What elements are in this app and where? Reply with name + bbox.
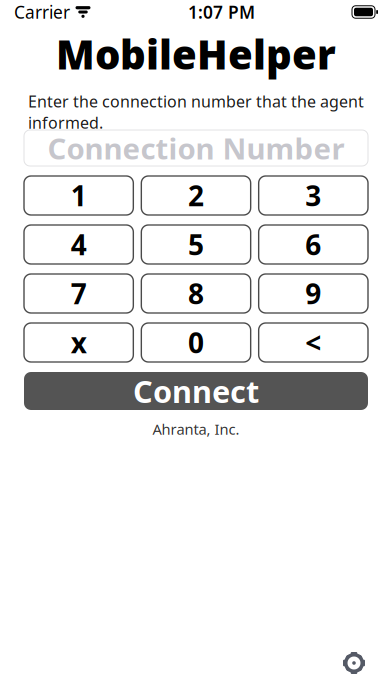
staticText: Enter the connection number that the age… [28,91,364,133]
staticText: 2 [188,177,204,214]
staticText: 3 [305,177,321,214]
staticText: Connection Number [47,128,344,167]
button[interactable]: 9 [259,274,368,313]
button[interactable]: 7 [24,274,133,313]
button[interactable]: 0 [141,323,251,362]
staticText: 4 [71,226,87,263]
button[interactable]: Settings [337,646,371,680]
button[interactable]: 3 [259,176,368,215]
staticText: 5 [188,226,204,263]
button[interactable]: < [259,323,368,362]
staticText: 0 [188,324,204,361]
staticText: Connect [133,371,259,411]
button[interactable]: 4 [24,225,133,264]
staticText: MobileHelper [56,27,336,80]
staticText: 1:07 PM [188,0,255,23]
staticText: Ahranta, Inc. [152,419,239,439]
button[interactable]: 8 [141,274,251,313]
button[interactable]: Connect [0,372,392,410]
staticText: 6 [305,226,321,263]
staticText: 1 [71,177,87,214]
staticText: 7 [71,275,87,312]
button[interactable]: 5 [141,225,251,264]
button[interactable]: 1 [24,176,133,215]
staticText: 9 [305,275,321,312]
staticText: Carrier [14,0,70,23]
button[interactable]: 2 [141,176,251,215]
staticText: < [305,324,321,361]
button[interactable]: x [24,323,133,362]
button[interactable]: 6 [259,225,368,264]
staticText: 8 [188,275,204,312]
staticText: x [71,324,87,361]
button[interactable]: Connection Number [0,130,392,166]
